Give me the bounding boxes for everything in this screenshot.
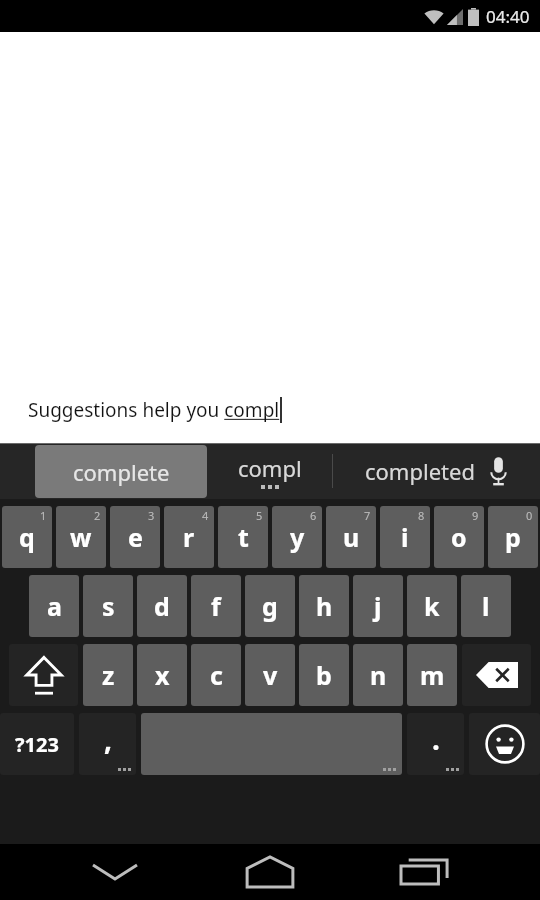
staticText: 1 [40, 508, 47, 523]
button[interactable]: n [353, 644, 403, 706]
button[interactable]: d [137, 575, 187, 637]
staticText: t [238, 520, 249, 554]
button[interactable]: x [137, 644, 187, 706]
button[interactable]: Backspace [462, 644, 531, 706]
button[interactable]: s [83, 575, 133, 637]
staticText: i [401, 520, 409, 554]
button[interactable]: b [299, 644, 349, 706]
staticText: d [154, 589, 170, 623]
staticText: s [102, 589, 115, 623]
button[interactable]: g [245, 575, 295, 637]
button[interactable]: v [245, 644, 295, 706]
staticText: n [370, 658, 387, 692]
staticText: Suggestions help you compl [28, 397, 280, 423]
staticText: 0 [526, 508, 533, 523]
staticText: l [482, 589, 490, 623]
staticText: 7 [364, 508, 371, 523]
staticText: e [128, 520, 143, 554]
staticText: 4 [202, 508, 209, 523]
button[interactable]: Emoji [469, 713, 540, 775]
staticText: z [102, 658, 115, 692]
button[interactable]: r [164, 506, 214, 568]
staticText: j [374, 589, 382, 623]
button[interactable]: h [299, 575, 349, 637]
staticText: ?123 [15, 731, 59, 758]
staticText: 5 [256, 508, 263, 523]
staticText: m [420, 658, 445, 692]
button[interactable]: Recent apps [385, 844, 465, 900]
button[interactable]: Home [230, 844, 310, 900]
staticText: complete [73, 457, 170, 487]
staticText: x [155, 658, 170, 692]
staticText: compl [238, 453, 302, 483]
button[interactable]: m [407, 644, 457, 706]
staticText: , [104, 720, 112, 758]
button[interactable]: i [380, 506, 430, 568]
staticText: y [290, 520, 305, 554]
staticText: 04:40 [486, 5, 530, 28]
button[interactable]: t [218, 506, 268, 568]
button[interactable]: ?123 [0, 713, 74, 775]
button[interactable]: complete [35, 445, 207, 498]
button[interactable]: . [407, 713, 464, 775]
button[interactable]: Hide keyboard [75, 844, 155, 900]
button[interactable]: w [56, 506, 106, 568]
staticText: k [424, 589, 440, 623]
staticText: 3 [148, 508, 155, 523]
button[interactable]: p [488, 506, 538, 568]
staticText: q [19, 520, 35, 554]
button[interactable]: completed [333, 443, 540, 499]
staticText: completed [365, 456, 475, 486]
staticText: h [316, 589, 333, 623]
staticText: o [451, 520, 467, 554]
button[interactable]: , [79, 713, 136, 775]
staticText: c [210, 658, 223, 692]
button[interactable]: a [29, 575, 79, 637]
staticText: p [505, 520, 521, 554]
staticText: f [211, 589, 221, 623]
button[interactable]: c [191, 644, 241, 706]
staticText: a [47, 589, 62, 623]
staticText: 6 [310, 508, 317, 523]
staticText: w [70, 520, 92, 554]
button[interactable]: j [353, 575, 403, 637]
button[interactable]: f [191, 575, 241, 637]
staticText: 9 [472, 508, 479, 523]
staticText: r [183, 520, 195, 554]
button[interactable]: compl [207, 443, 332, 499]
button[interactable]: o [434, 506, 484, 568]
staticText: 8 [418, 508, 425, 523]
staticText: g [262, 589, 278, 623]
staticText: 2 [94, 508, 101, 523]
button[interactable]: k [407, 575, 457, 637]
other: Voice input [489, 456, 508, 486]
staticText: b [316, 658, 332, 692]
button[interactable]: Shift [9, 644, 78, 706]
button[interactable]: u [326, 506, 376, 568]
staticText: u [343, 520, 360, 554]
button[interactable]: y [272, 506, 322, 568]
button[interactable]: e [110, 506, 160, 568]
button[interactable]: z [83, 644, 133, 706]
staticText: . [432, 720, 440, 758]
staticText: v [263, 658, 278, 692]
button[interactable]: l [461, 575, 511, 637]
button[interactable]: q [2, 506, 52, 568]
